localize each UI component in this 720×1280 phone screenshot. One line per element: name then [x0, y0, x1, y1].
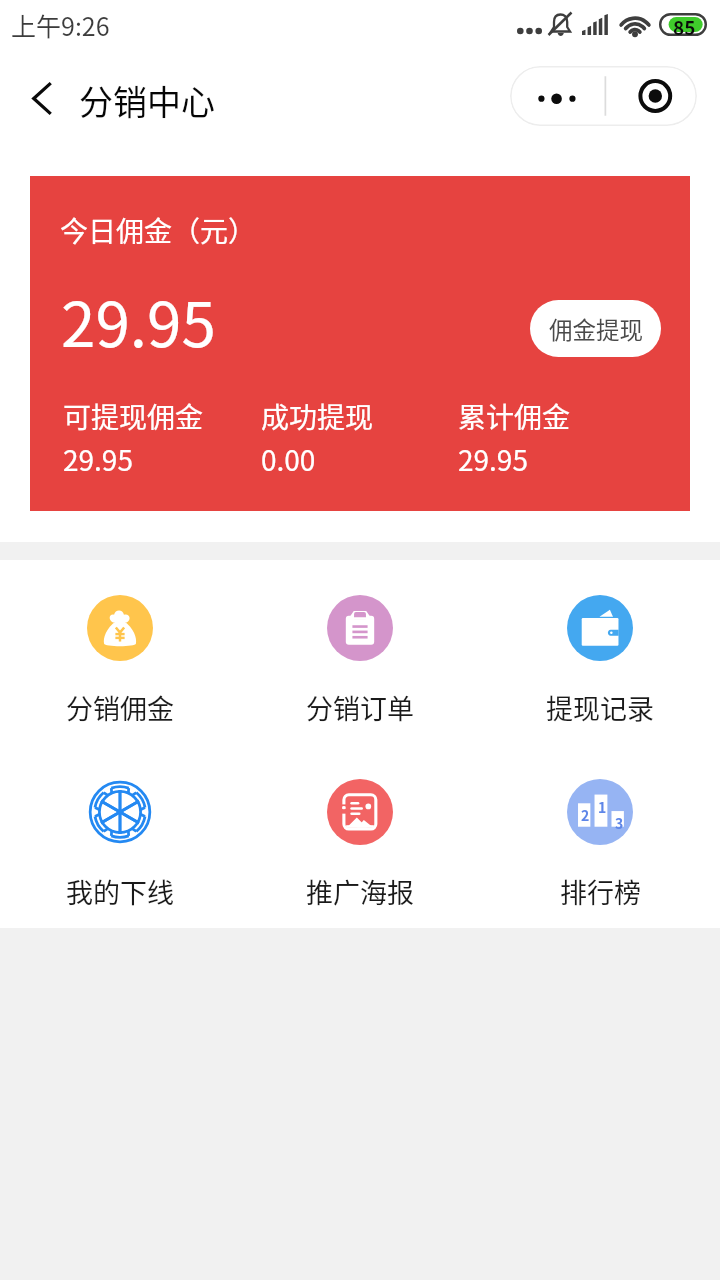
button[interactable]: 推广海报	[240, 779, 480, 911]
staticText: 0.00	[261, 439, 316, 480]
staticText: 29.95	[458, 439, 528, 480]
button[interactable]: 提现记录	[480, 595, 720, 727]
staticText: 分销订单	[306, 688, 414, 727]
staticText: 1	[598, 797, 607, 817]
button[interactable]: 佣金提现	[530, 300, 661, 357]
staticText: 今日佣金（元）	[60, 210, 257, 251]
staticText: 分销中心	[79, 76, 215, 125]
button[interactable]: 分销订单	[240, 595, 480, 727]
button[interactable]: Back	[10, 67, 72, 129]
button[interactable]: 分销佣金	[0, 595, 240, 727]
staticText: 佣金提现	[549, 312, 643, 346]
staticText: 排行榜	[560, 872, 641, 911]
staticText: 提现记录	[546, 688, 654, 727]
staticText: 29.95	[63, 439, 133, 480]
staticText: 3	[615, 813, 624, 833]
staticText: 累计佣金	[458, 396, 571, 437]
staticText: 29.95	[61, 275, 216, 365]
staticText: 推广海报	[306, 872, 414, 911]
staticText: 我的下线	[66, 872, 174, 911]
staticText: 成功提现	[261, 396, 374, 437]
staticText: 2	[581, 805, 590, 825]
staticText: 分销佣金	[66, 688, 174, 727]
button[interactable]: 我的下线	[0, 779, 240, 911]
button[interactable]: More options	[510, 66, 697, 126]
staticText: 85	[673, 13, 696, 36]
staticText: 可提现佣金	[63, 396, 204, 437]
staticText: 上午9:26	[11, 7, 110, 43]
button[interactable]: 2	[480, 779, 720, 911]
